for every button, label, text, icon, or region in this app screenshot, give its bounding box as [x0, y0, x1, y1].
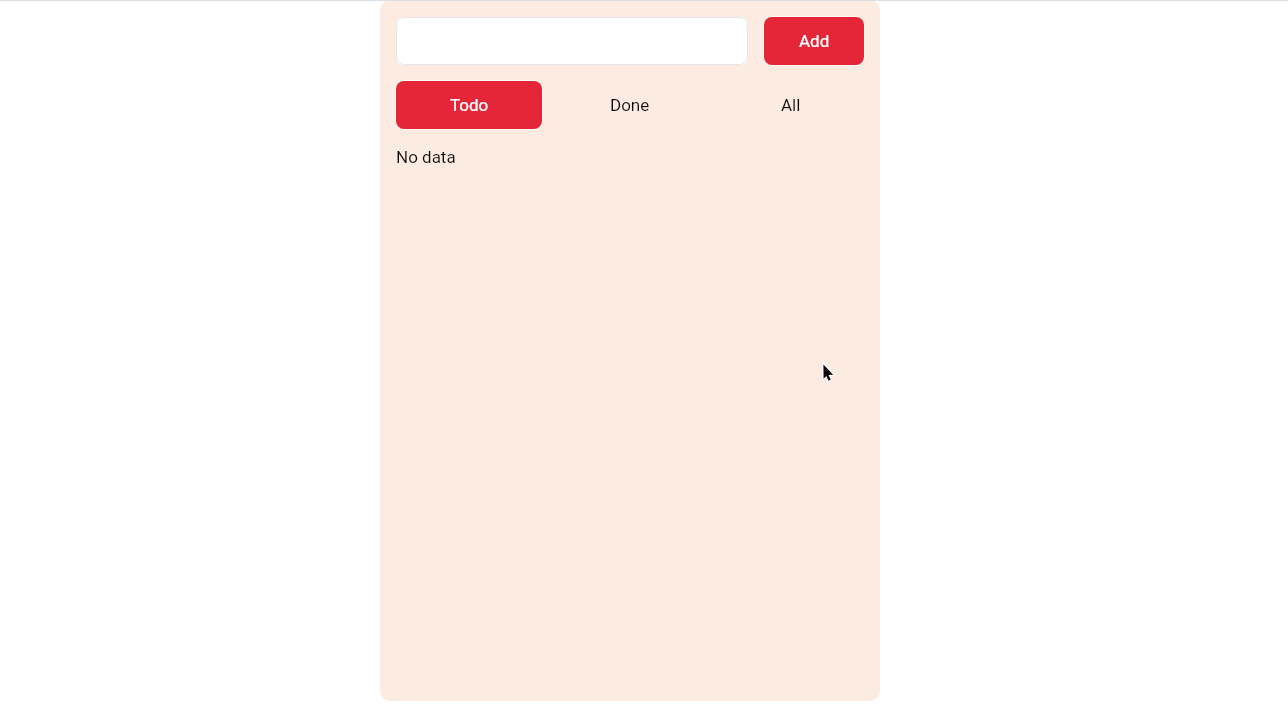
staticText: All: [781, 95, 801, 115]
button[interactable]: Done: [557, 81, 703, 129]
staticText: Todo: [450, 95, 489, 115]
staticText: No data: [396, 147, 456, 167]
button[interactable]: New todo text field: [396, 17, 748, 65]
button[interactable]: Add: [764, 17, 864, 65]
button[interactable]: Todo: [396, 81, 542, 129]
staticText: Done: [610, 95, 650, 115]
button[interactable]: All: [718, 81, 864, 129]
staticText: Add: [799, 31, 830, 51]
